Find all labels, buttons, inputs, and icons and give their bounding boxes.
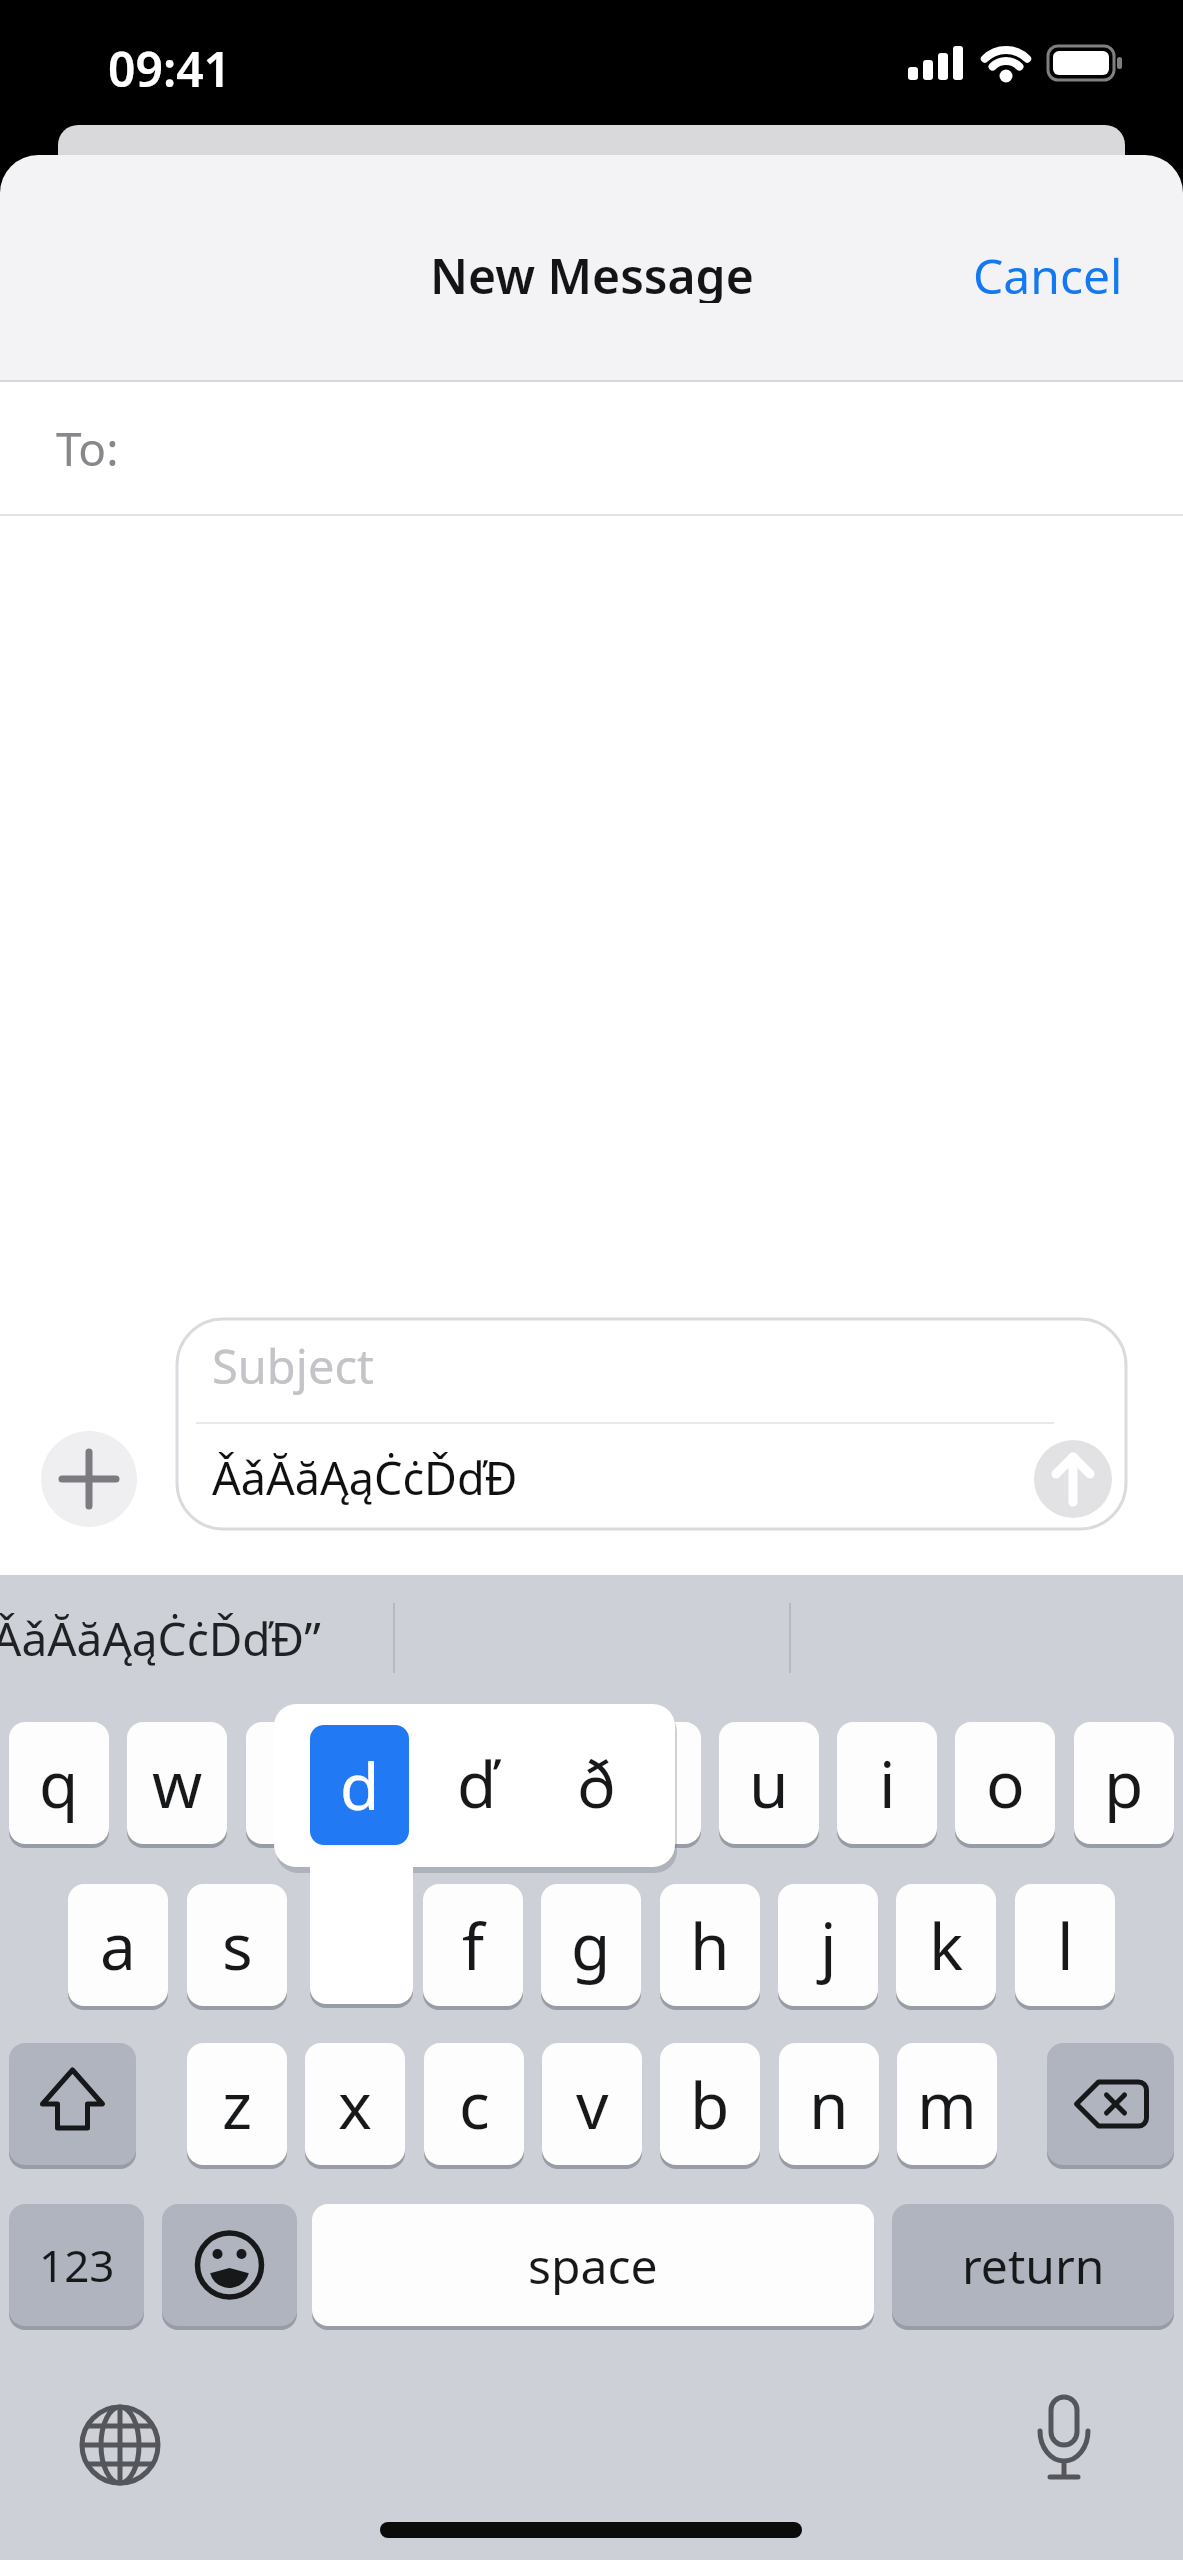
button[interactable] bbox=[41, 1431, 137, 1527]
staticText: r bbox=[401, 1740, 428, 1827]
staticText: x bbox=[338, 2061, 372, 2148]
staticText: c bbox=[459, 2061, 490, 2148]
staticText: f bbox=[462, 1902, 485, 1989]
staticText: z bbox=[222, 2061, 253, 2148]
button[interactable]: i bbox=[837, 1722, 937, 1848]
staticText: s bbox=[222, 1902, 253, 1989]
button[interactable]: h bbox=[660, 1884, 760, 2010]
button[interactable]: o bbox=[955, 1722, 1055, 1848]
button[interactable]: q bbox=[9, 1722, 109, 1848]
button[interactable]: x bbox=[305, 2043, 405, 2169]
button[interactable]: z bbox=[187, 2043, 287, 2169]
button[interactable]: u bbox=[719, 1722, 819, 1848]
button[interactable]: space bbox=[312, 2204, 874, 2330]
staticText: a bbox=[100, 1902, 136, 1989]
staticText: 09:41 bbox=[108, 36, 232, 90]
button[interactable] bbox=[162, 2204, 297, 2330]
staticText: 123 bbox=[39, 2235, 115, 2295]
staticText: ǍǎĂăĄąĊċĎďĐ” bbox=[0, 1607, 321, 1670]
button[interactable]: r bbox=[364, 1722, 464, 1848]
button[interactable]: To: bbox=[0, 382, 1183, 514]
button[interactable] bbox=[9, 2043, 136, 2169]
staticText: q bbox=[39, 1740, 79, 1827]
button[interactable]: y bbox=[601, 1722, 701, 1848]
staticText: e bbox=[278, 1740, 315, 1827]
button[interactable]: m bbox=[897, 2043, 997, 2169]
button[interactable]: c bbox=[424, 2043, 524, 2169]
button[interactable]: v bbox=[542, 2043, 642, 2169]
staticText: space bbox=[528, 2233, 658, 2298]
button[interactable]: j bbox=[778, 1884, 878, 2010]
button[interactable]: b bbox=[660, 2043, 760, 2169]
button[interactable] bbox=[177, 1319, 1126, 1529]
button[interactable]: n bbox=[779, 2043, 879, 2169]
staticText: ð bbox=[577, 1740, 616, 1827]
staticText: ď bbox=[457, 1740, 497, 1827]
staticText: m bbox=[917, 2061, 977, 2148]
staticText: d bbox=[340, 1742, 380, 1829]
button[interactable]: t bbox=[482, 1722, 582, 1848]
staticText: g bbox=[571, 1902, 611, 1989]
staticText: j bbox=[820, 1902, 837, 1989]
staticText: Cancel bbox=[973, 243, 1123, 303]
button[interactable] bbox=[1034, 1440, 1112, 1518]
staticText: o bbox=[986, 1740, 1025, 1827]
staticText: u bbox=[749, 1740, 789, 1827]
staticText: w bbox=[152, 1740, 203, 1827]
staticText: Subject bbox=[212, 1334, 374, 1398]
button[interactable]: e bbox=[246, 1722, 346, 1848]
staticText: l bbox=[1057, 1902, 1074, 1989]
button[interactable]: s bbox=[187, 1884, 287, 2010]
staticText: b bbox=[690, 2061, 730, 2148]
staticText: To: bbox=[56, 417, 119, 480]
staticText: v bbox=[576, 2061, 609, 2148]
staticText: ǍǎĂăĄąĊċĎďĐ bbox=[212, 1447, 518, 1508]
staticText: New Message bbox=[430, 243, 754, 303]
button[interactable] bbox=[70, 2395, 170, 2495]
staticText: h bbox=[690, 1902, 730, 1989]
button[interactable]: k bbox=[896, 1884, 996, 2010]
button[interactable]: p bbox=[1074, 1722, 1174, 1848]
button[interactable]: f bbox=[423, 1884, 523, 2010]
button[interactable]: return bbox=[892, 2204, 1174, 2330]
button[interactable]: g bbox=[541, 1884, 641, 2010]
staticText: i bbox=[879, 1740, 896, 1827]
button[interactable]: Cancel bbox=[800, 243, 1123, 303]
button[interactable]: l bbox=[1015, 1884, 1115, 2010]
button[interactable]: 123 bbox=[9, 2204, 144, 2330]
staticText: return bbox=[962, 2233, 1105, 2298]
staticText: k bbox=[929, 1902, 964, 1989]
button[interactable]: w bbox=[127, 1722, 227, 1848]
button[interactable] bbox=[1047, 2043, 1174, 2169]
staticText: p bbox=[1104, 1740, 1144, 1827]
button[interactable] bbox=[1014, 2393, 1114, 2493]
button[interactable]: a bbox=[68, 1884, 168, 2010]
staticText: n bbox=[809, 2061, 849, 2148]
